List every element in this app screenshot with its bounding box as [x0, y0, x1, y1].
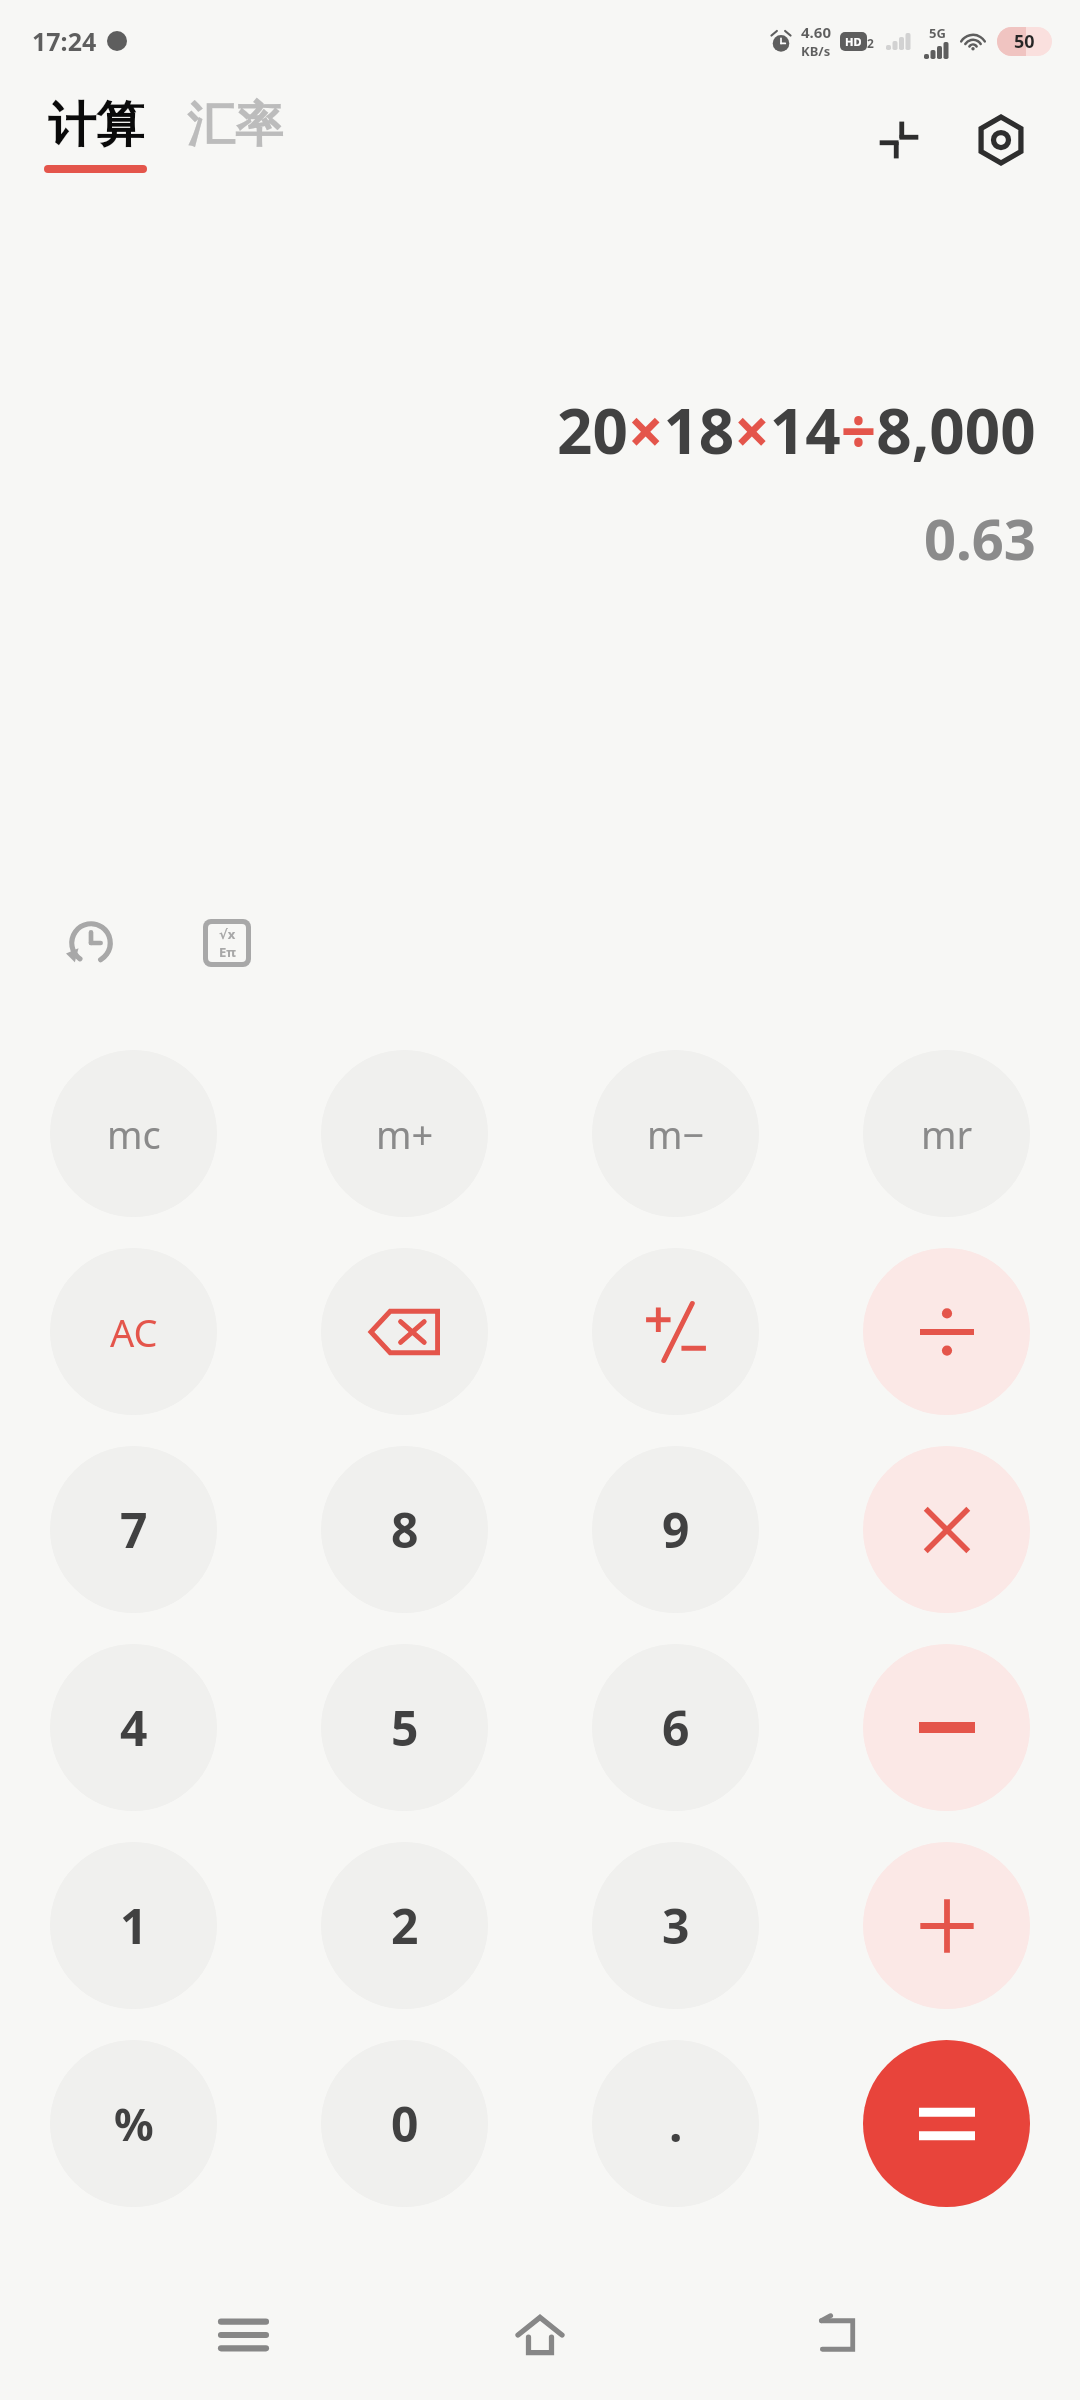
button[interactable]: m− [592, 1050, 759, 1217]
button[interactable]: 3 [592, 1842, 759, 2009]
button[interactable]: 4 [50, 1644, 217, 1811]
staticText: 0.63 [924, 500, 1036, 576]
staticText: mc [107, 1108, 161, 1160]
staticText: % [114, 2094, 154, 2154]
button[interactable]: Scientific mode [184, 900, 270, 986]
staticText: Eπ [219, 943, 236, 961]
staticText: 4.60 [801, 22, 831, 42]
button[interactable]: Multiply [863, 1446, 1030, 1613]
staticText: 1 [120, 1893, 148, 1958]
staticText: 5 [391, 1695, 419, 1760]
button[interactable]: 计算 [44, 95, 147, 173]
button[interactable]: 9 [592, 1446, 759, 1613]
staticText: 3 [662, 1893, 690, 1958]
button[interactable]: 汇率 [187, 95, 283, 155]
button[interactable]: mc [50, 1050, 217, 1217]
button[interactable]: Divide [863, 1248, 1030, 1415]
button[interactable]: Recents [188, 2280, 298, 2390]
staticText: 9 [662, 1497, 690, 1562]
button[interactable]: Equals [863, 2040, 1030, 2207]
staticText: √x [219, 925, 236, 943]
button[interactable]: m+ [321, 1050, 488, 1217]
staticText: mr [921, 1108, 973, 1160]
button[interactable]: Minus [863, 1644, 1030, 1811]
staticText: 5G [929, 24, 946, 42]
staticText: 计算 [48, 95, 144, 155]
staticText: 6 [662, 1695, 690, 1760]
button[interactable]: 1 [50, 1842, 217, 2009]
button[interactable]: mr [863, 1050, 1030, 1217]
button[interactable]: 8 [321, 1446, 488, 1613]
staticText: 2 [391, 1893, 419, 1958]
button[interactable]: 2 [321, 1842, 488, 2009]
staticText: m− [647, 1108, 705, 1160]
staticText: 50 [1014, 29, 1035, 54]
staticText: . [669, 2091, 683, 2156]
button[interactable]: Plus [863, 1842, 1030, 2009]
button[interactable]: Backspace [321, 1248, 488, 1415]
staticText: 2 [867, 35, 874, 51]
staticText: AC [110, 1306, 158, 1358]
button[interactable]: Collapse [860, 101, 938, 179]
button[interactable]: Plus minus [592, 1248, 759, 1415]
button[interactable]: % [50, 2040, 217, 2207]
staticText: 汇率 [187, 95, 283, 155]
staticText: 0 [391, 2091, 419, 2156]
button[interactable]: History [48, 900, 134, 986]
staticText: 8 [391, 1497, 419, 1562]
button[interactable]: 6 [592, 1644, 759, 1811]
staticText: 20×18×14÷8,000 [557, 388, 1036, 472]
staticText: HD [845, 34, 862, 49]
staticText: 7 [120, 1497, 148, 1562]
button[interactable]: . [592, 2040, 759, 2207]
button[interactable]: Home [485, 2280, 595, 2390]
button[interactable]: 5 [321, 1644, 488, 1811]
staticText: 4 [120, 1695, 148, 1760]
button[interactable]: 7 [50, 1446, 217, 1613]
staticText: m+ [376, 1108, 434, 1160]
button[interactable]: Settings [962, 101, 1040, 179]
button[interactable]: Back [783, 2280, 893, 2390]
staticText: KB/s [801, 42, 831, 60]
button[interactable]: AC [50, 1248, 217, 1415]
button[interactable]: 0 [321, 2040, 488, 2207]
staticText: 17:24 [32, 24, 97, 58]
